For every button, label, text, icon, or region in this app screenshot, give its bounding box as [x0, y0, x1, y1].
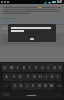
button[interactable]: [35, 27, 38, 30]
staticText: ⇧: [5, 85, 8, 88]
staticText: H: [39, 75, 42, 79]
button[interactable]: R: [21, 63, 27, 72]
staticText: E: [17, 66, 19, 70]
button[interactable]: [19, 27, 22, 30]
button[interactable]: S: [10, 73, 17, 81]
button[interactable]: Backspace: [54, 82, 63, 90]
button[interactable]: Symbols: [1, 91, 10, 99]
staticText: ⌫: [57, 85, 61, 88]
staticText: .: [50, 93, 51, 97]
staticText: J: [46, 75, 47, 79]
staticText: B: [38, 84, 41, 88]
button[interactable]: Space: [16, 91, 47, 99]
button[interactable]: F: [24, 73, 31, 81]
button[interactable]: N: [42, 82, 48, 90]
button[interactable]: D: [17, 73, 24, 81]
button[interactable]: [31, 27, 34, 30]
button[interactable]: C: [24, 82, 30, 90]
staticText: Q: [3, 66, 6, 70]
staticText: ↵: [57, 94, 60, 97]
staticText: Z: [14, 84, 16, 88]
staticText: A: [5, 75, 8, 79]
button[interactable]: [39, 27, 42, 30]
button[interactable]: K: [49, 73, 55, 81]
button[interactable]: V: [30, 82, 36, 90]
button[interactable]: B: [36, 82, 42, 90]
button[interactable]: [27, 27, 30, 30]
staticText: X: [20, 84, 22, 88]
button[interactable]: M: [48, 82, 54, 90]
button[interactable]: Z: [11, 82, 18, 90]
button[interactable]: O: [51, 63, 57, 72]
button[interactable]: H: [37, 73, 43, 81]
staticText: Y: [35, 66, 37, 70]
button[interactable]: [23, 27, 26, 30]
button[interactable]: [11, 27, 14, 30]
button[interactable]: I: [45, 63, 51, 72]
button[interactable]: [3, 21, 15, 22]
button[interactable]: U: [39, 63, 45, 72]
staticText: I: [47, 66, 49, 70]
staticText: T: [29, 66, 31, 70]
button[interactable]: Shift: [1, 82, 11, 90]
staticText: ?123: [3, 93, 9, 97]
staticText: U: [41, 66, 44, 70]
button[interactable]: Enter: [53, 91, 63, 99]
staticText: P: [59, 66, 61, 70]
staticText: S: [13, 75, 15, 79]
button[interactable]: [15, 27, 18, 30]
staticText: O: [53, 66, 56, 70]
button[interactable]: Q: [1, 63, 8, 72]
staticText: M: [50, 84, 53, 88]
button[interactable]: J: [43, 73, 49, 81]
button[interactable]: X: [18, 82, 24, 90]
button[interactable]: T: [27, 63, 33, 72]
staticText: D: [19, 75, 22, 79]
button[interactable]: W: [8, 63, 15, 72]
staticText: C: [26, 84, 29, 88]
staticText: ,: [13, 93, 14, 97]
staticText: V: [32, 84, 34, 88]
button[interactable]: G: [31, 73, 37, 81]
staticText: G: [33, 75, 36, 79]
button[interactable]: [50, 21, 61, 22]
staticText: W: [10, 66, 13, 70]
staticText: F: [27, 75, 29, 79]
button[interactable]: OK: [26, 36, 38, 42]
button[interactable]: Y: [33, 63, 39, 72]
button[interactable]: P: [57, 63, 63, 72]
staticText: R: [23, 66, 25, 70]
button[interactable]: L: [55, 73, 61, 81]
staticText: K: [51, 75, 53, 79]
staticText: N: [44, 84, 47, 88]
staticText: 9:41: [57, 0, 63, 4]
button[interactable]: A: [3, 73, 10, 81]
button[interactable]: E: [15, 63, 21, 72]
staticText: L: [57, 75, 59, 79]
